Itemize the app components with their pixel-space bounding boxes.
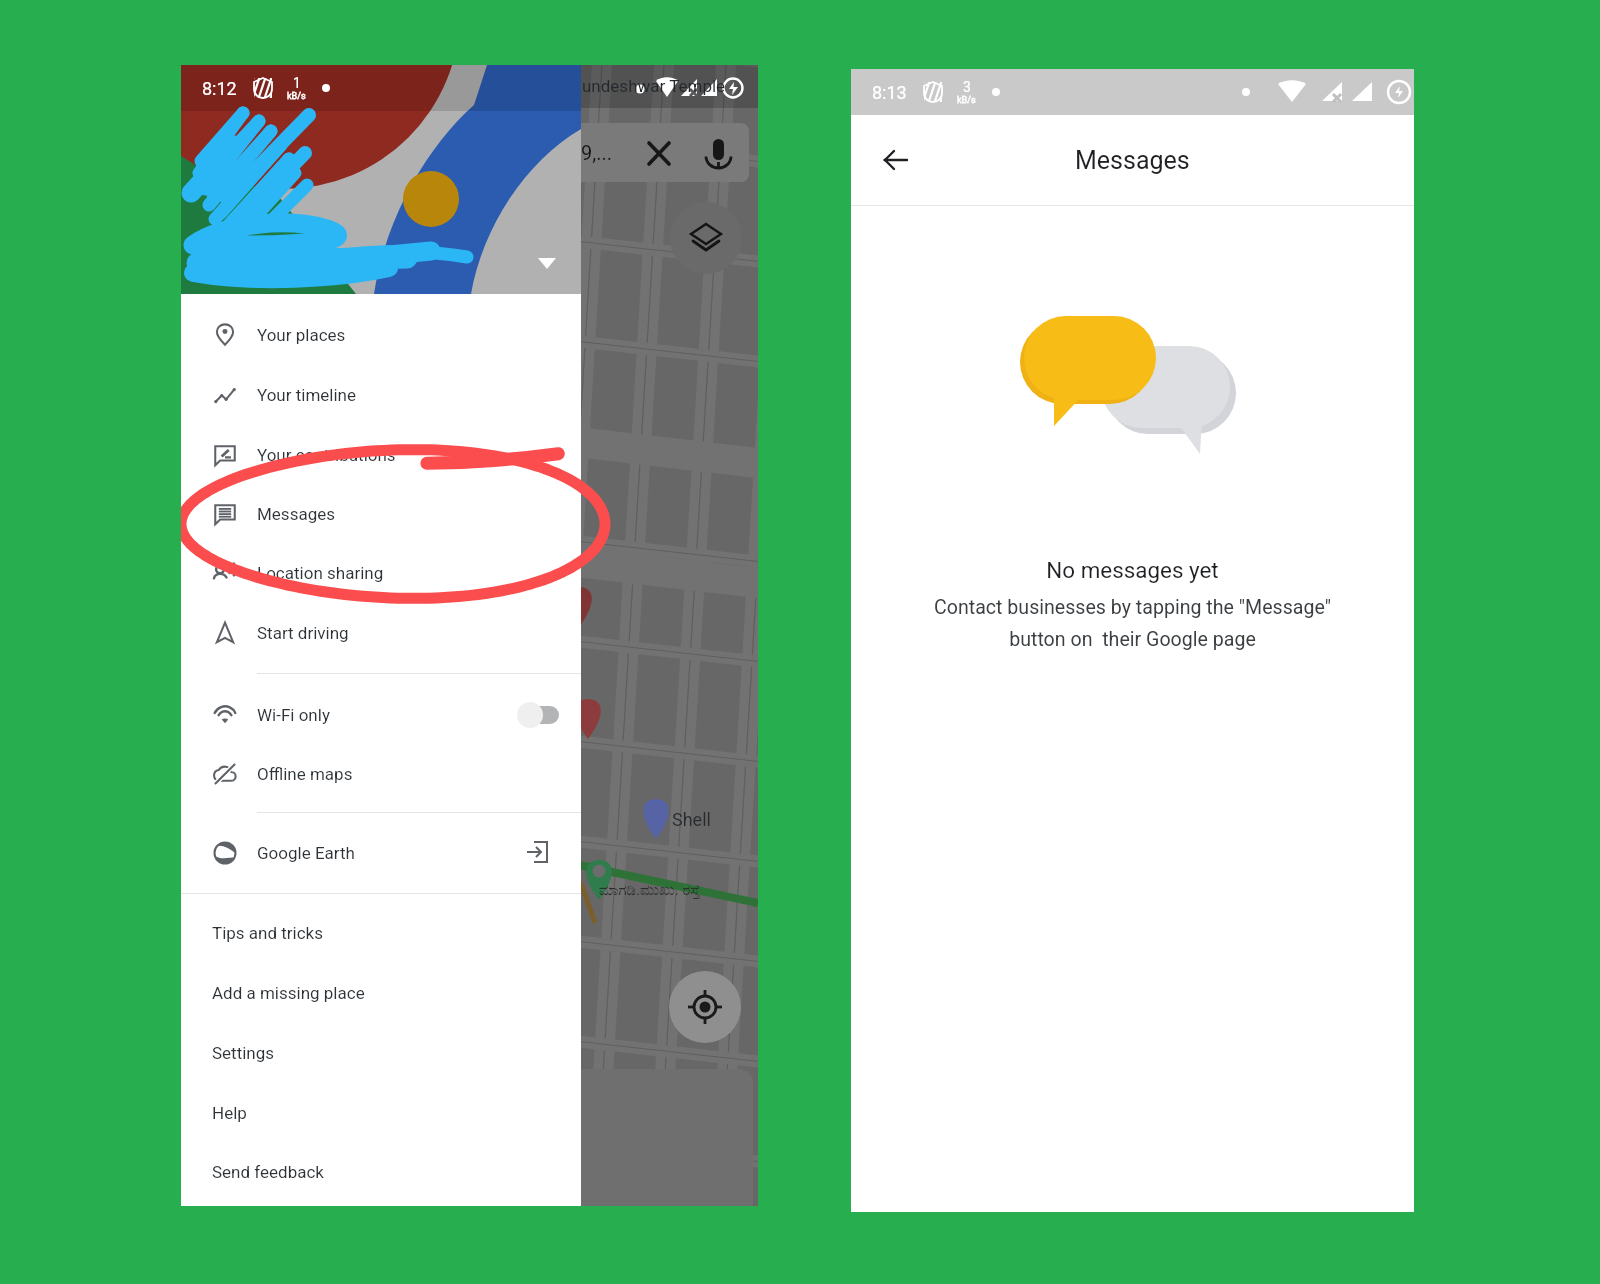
staticText: Tips and tricks xyxy=(212,923,323,943)
button[interactable]: Switch account xyxy=(521,237,573,289)
staticText: 8:12 xyxy=(202,78,237,99)
staticText: Shell xyxy=(672,809,711,830)
button[interactable]: Back xyxy=(863,127,929,193)
staticText: ಮಾಗಡಿ.ಮುಖು. ರಸ್ತೆ xyxy=(599,881,700,899)
button[interactable]: Messages xyxy=(181,484,581,544)
button[interactable]: Location sharing xyxy=(181,543,581,603)
staticText: Google Earth xyxy=(257,843,355,863)
staticText: 1 xyxy=(293,75,301,91)
staticText: Wi-Fi only xyxy=(257,705,330,725)
button[interactable]: Google Earth xyxy=(181,823,581,883)
staticText: Messages xyxy=(1075,146,1190,175)
staticText: undeshwar Temple xyxy=(582,76,726,96)
button[interactable]: Your timeline xyxy=(181,365,581,425)
button[interactable]: Your location xyxy=(669,971,741,1043)
staticText: Messages xyxy=(257,504,335,524)
button[interactable]: Send feedback xyxy=(181,1142,581,1202)
button[interactable]: Start driving xyxy=(181,603,581,663)
button[interactable]: Your places xyxy=(181,305,581,365)
staticText: Add a missing place xyxy=(212,983,365,1003)
staticText: kB/s xyxy=(957,95,976,106)
button[interactable]: Map layers xyxy=(670,202,742,274)
button[interactable]: Your contributions xyxy=(181,425,581,485)
staticText: Your places xyxy=(257,325,346,345)
staticText: Contact businesses by tapping the "Messa… xyxy=(851,596,1414,651)
staticText: 8:13 xyxy=(872,82,907,103)
staticText: Your timeline xyxy=(257,385,357,405)
staticText: 9,... xyxy=(581,141,612,164)
staticText: 3 xyxy=(963,79,971,95)
staticText: Your contributions xyxy=(257,445,396,465)
staticText: Help xyxy=(212,1103,247,1123)
staticText: No messages yet xyxy=(851,557,1414,583)
staticText: Location sharing xyxy=(257,563,384,583)
button[interactable]: Account profile xyxy=(181,65,581,294)
button[interactable]: Offline maps xyxy=(181,744,581,804)
staticText: Offline maps xyxy=(257,764,353,784)
staticText: Send feedback xyxy=(212,1162,324,1182)
button[interactable]: Wi-Fi only xyxy=(181,685,581,745)
staticText: Start driving xyxy=(257,623,349,643)
staticText: kB/s xyxy=(287,91,306,102)
button[interactable]: Settings xyxy=(181,1023,581,1083)
button[interactable]: Add a missing place xyxy=(181,963,581,1023)
button[interactable]: Help xyxy=(181,1083,581,1143)
staticText: Settings xyxy=(212,1043,275,1063)
button[interactable]: Tips and tricks xyxy=(181,903,581,963)
